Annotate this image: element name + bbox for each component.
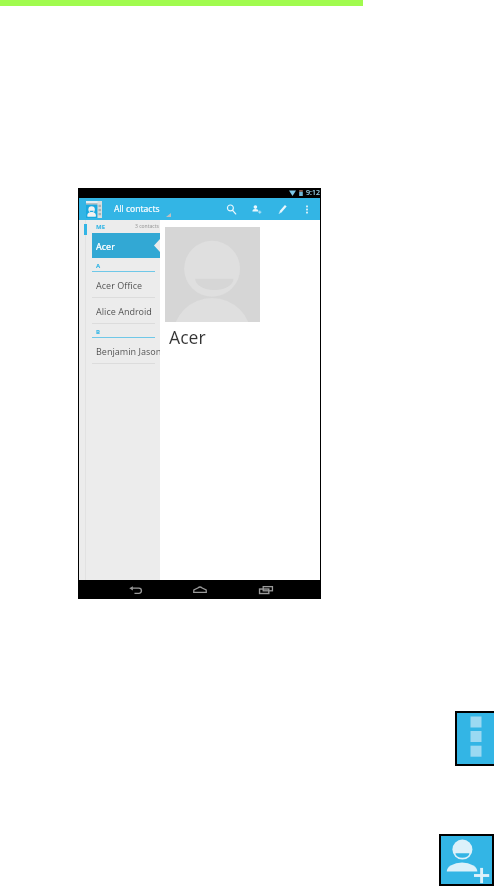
button[interactable]: Search (219, 198, 243, 220)
staticText: All contacts (114, 203, 160, 215)
staticText: Acer Office (96, 279, 143, 291)
staticText: B (96, 328, 100, 336)
staticText: Acer (96, 240, 115, 252)
staticText: Alice Android (96, 305, 152, 317)
button[interactable]: Home (188, 580, 212, 599)
button[interactable]: More options (455, 711, 494, 766)
button[interactable]: Acer Office (92, 272, 160, 298)
staticText: A (96, 262, 101, 270)
button[interactable]: Back (123, 580, 147, 599)
staticText: 3 contacts (135, 223, 159, 230)
staticText: ME (96, 223, 106, 231)
button[interactable]: Add contact (244, 198, 268, 220)
staticText: Acer (169, 325, 206, 349)
button[interactable]: Acer (92, 233, 160, 258)
button[interactable]: Alice Android (92, 298, 160, 324)
button[interactable]: Recent apps (254, 580, 278, 599)
button[interactable]: More options (296, 198, 318, 220)
button[interactable]: Benjamin Jason (92, 338, 160, 364)
button[interactable]: Add contact (439, 834, 494, 886)
staticText: Benjamin Jason (96, 345, 162, 357)
staticText: 9:12 (306, 188, 320, 198)
button[interactable]: Edit (270, 198, 294, 220)
